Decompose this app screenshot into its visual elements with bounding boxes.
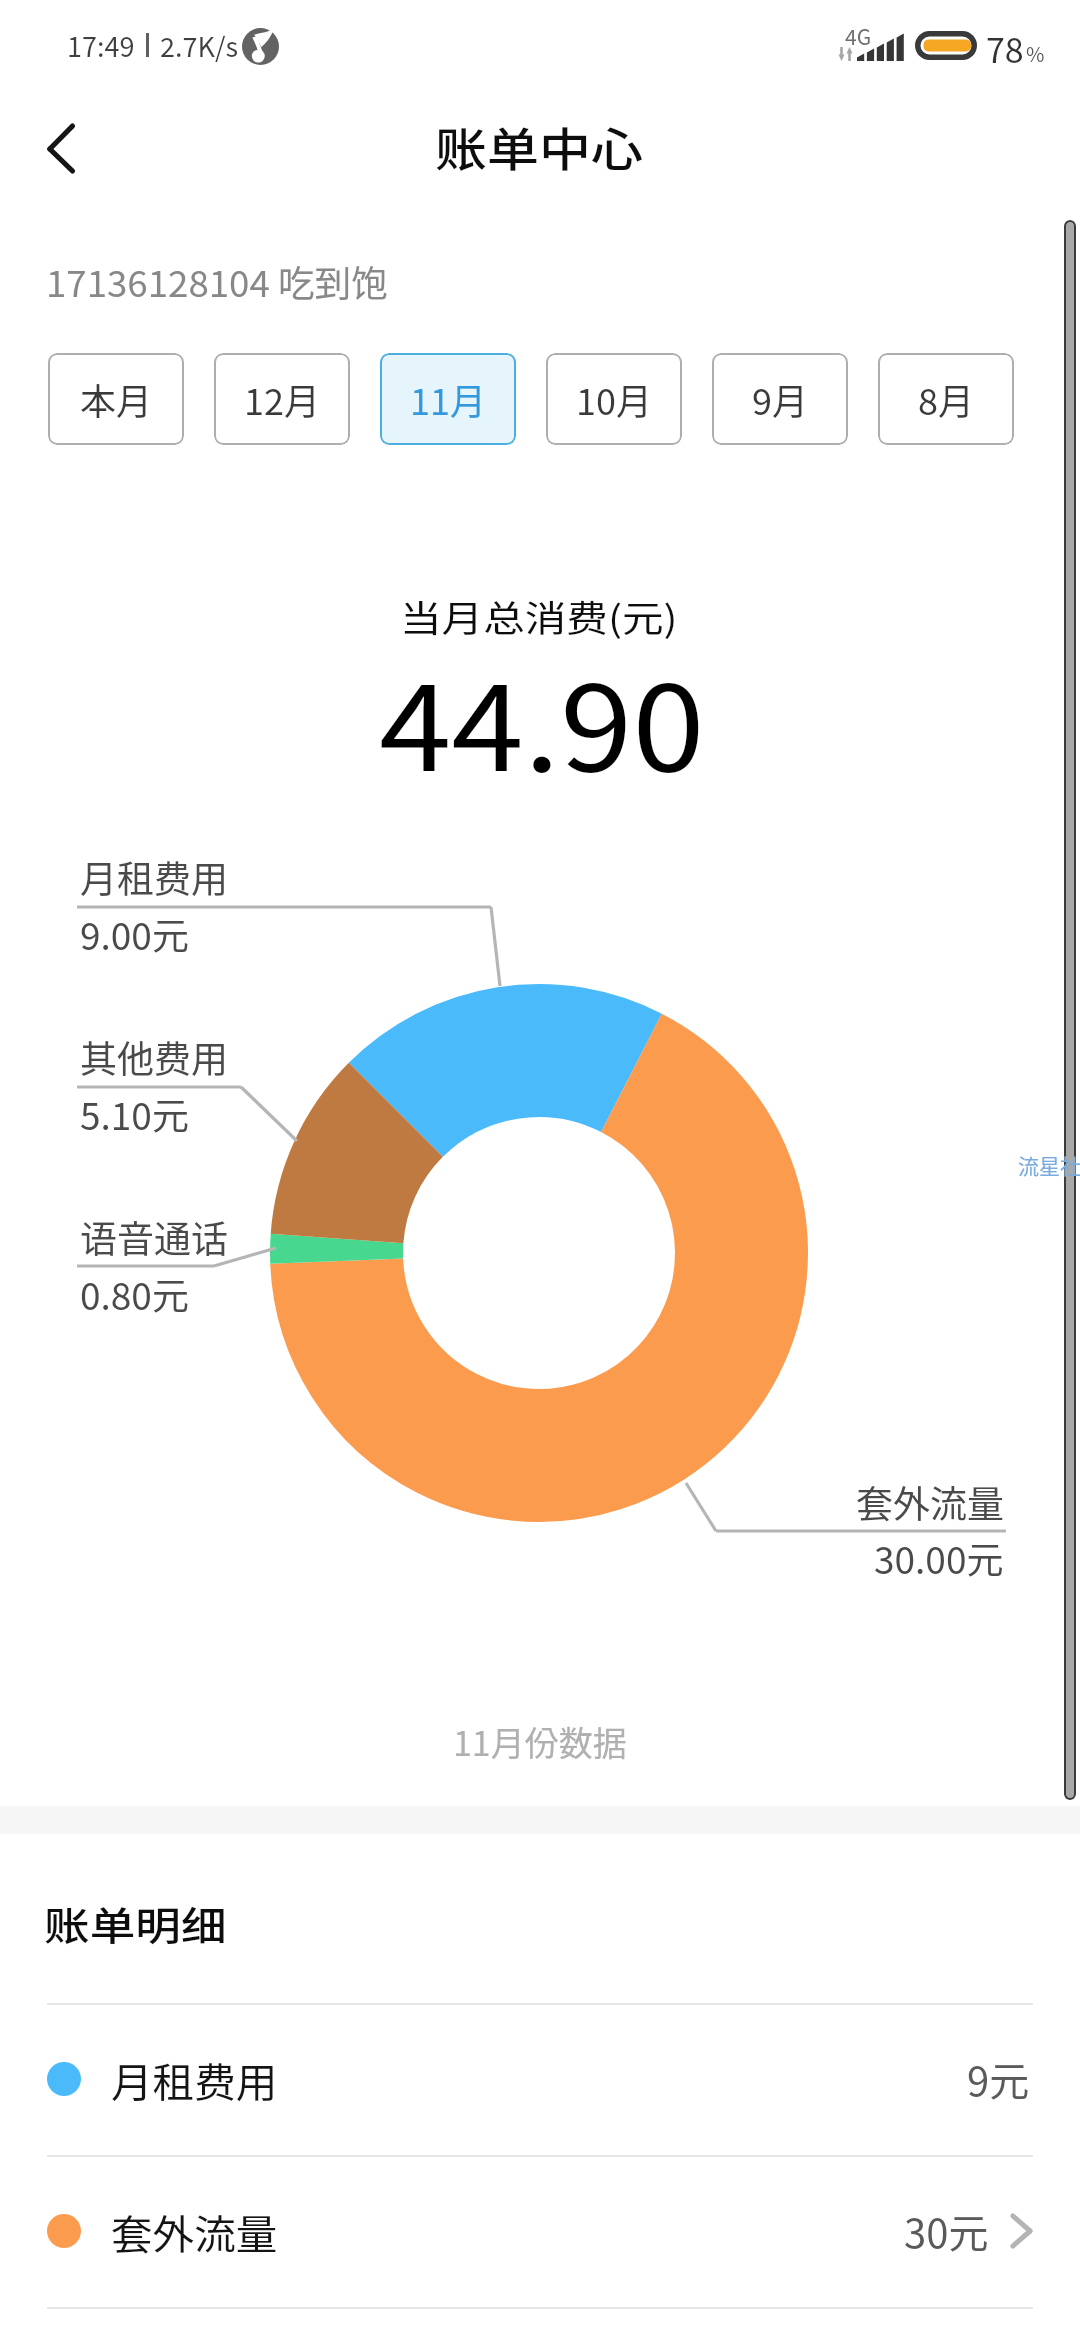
staticText: 17:49 <box>67 26 135 65</box>
button[interactable]: 12月 <box>214 353 350 445</box>
staticText: 5.10元 <box>80 1087 189 1141</box>
staticText: 当月总消费(元) <box>400 590 678 642</box>
staticText: 78 <box>986 24 1024 73</box>
button[interactable]: 10月 <box>546 353 682 445</box>
button[interactable]: 8月 <box>878 353 1014 445</box>
staticText: 9元 <box>967 2050 1030 2108</box>
staticText: 10月 <box>576 373 652 425</box>
staticText: 套外流量 <box>856 1475 1004 1529</box>
staticText: 语音通话 <box>80 1210 228 1264</box>
staticText: 账单中心 <box>435 113 643 180</box>
staticText: 本月 <box>80 373 153 425</box>
staticText: 11月份数据 <box>453 1717 627 1766</box>
staticText: 账单明细 <box>44 1895 228 1951</box>
staticText: 12月 <box>244 373 320 425</box>
staticText: 套外流量 <box>111 2203 277 2261</box>
staticText: 其他费用 <box>80 1030 228 1084</box>
staticText: 2.7K/s <box>160 26 239 65</box>
button[interactable]: Back <box>13 101 109 197</box>
button[interactable]: 月租费用 <box>0 2003 1080 2155</box>
button[interactable]: 9月 <box>712 353 848 445</box>
staticText: 0.80元 <box>80 1267 189 1321</box>
staticText: 30.00元 <box>874 1531 1004 1585</box>
staticText: 44.90 <box>379 634 705 805</box>
staticText: 月租费用 <box>80 850 228 904</box>
staticText: 11月 <box>410 373 486 425</box>
staticText: 月租费用 <box>111 2051 277 2109</box>
staticText: % <box>1026 39 1045 68</box>
staticText: 9.00元 <box>80 907 189 961</box>
staticText: 8月 <box>918 373 974 425</box>
staticText: 9月 <box>752 373 808 425</box>
button[interactable]: 套外流量 <box>0 2155 1080 2307</box>
button[interactable]: 本月 <box>48 353 184 445</box>
staticText: 30元 <box>904 2202 989 2260</box>
button[interactable]: 11月 <box>380 353 516 445</box>
staticText: 流星社区 <box>1018 1150 1080 1180</box>
staticText: 4G <box>845 21 872 51</box>
staticText: 17136128104 吃到饱 <box>46 255 388 307</box>
